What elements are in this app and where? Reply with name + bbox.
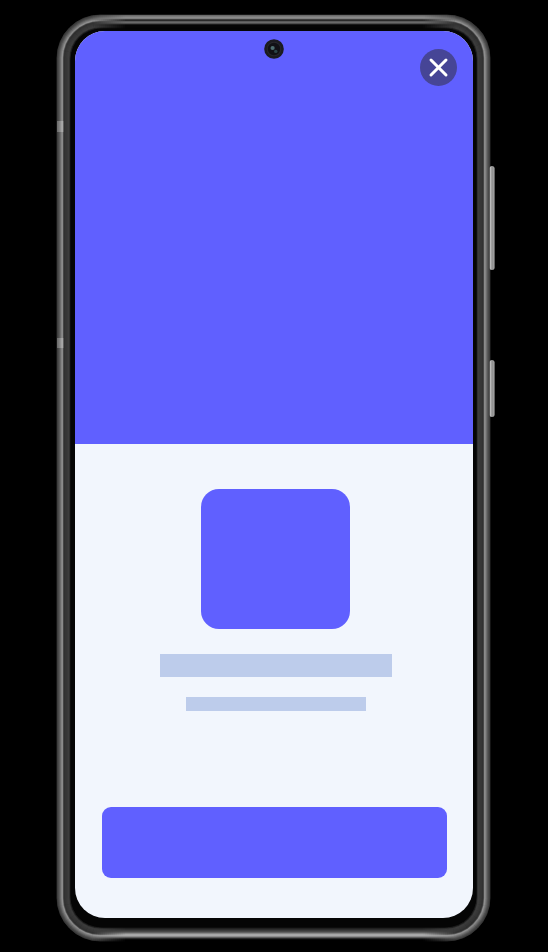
button[interactable]: Close [420,49,457,86]
button[interactable]: Continue [102,807,447,878]
